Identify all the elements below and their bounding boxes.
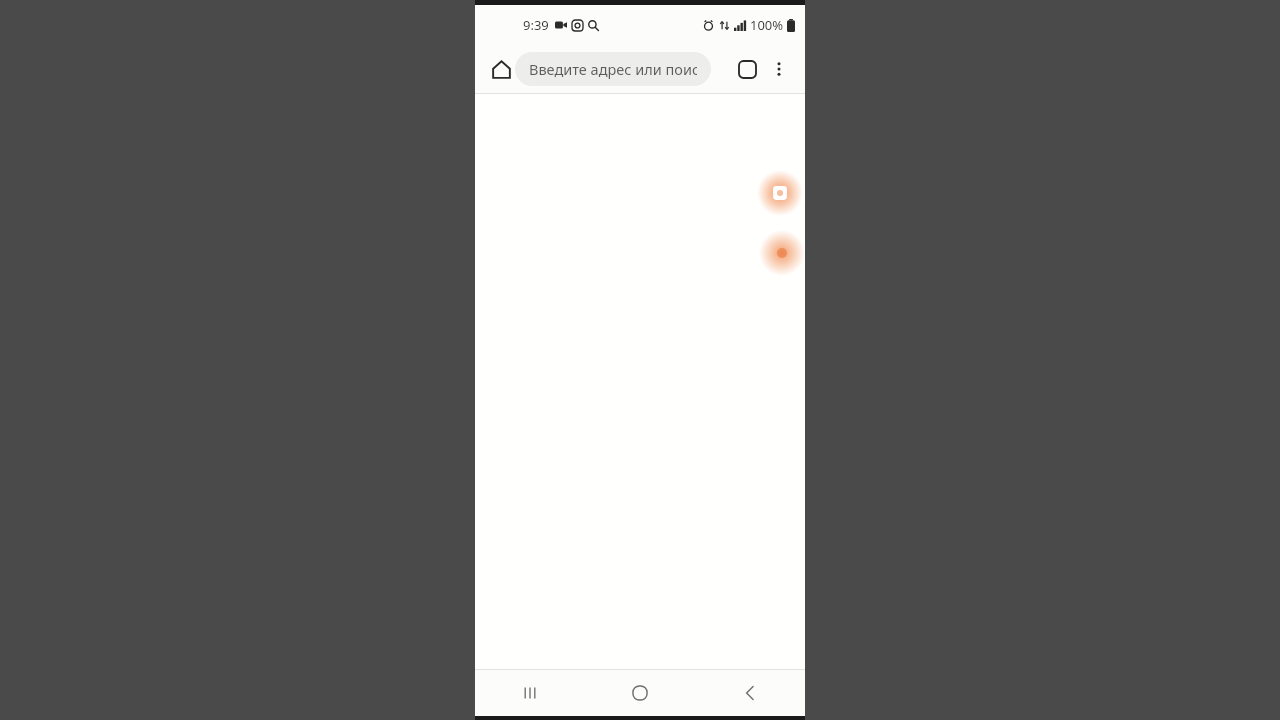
button[interactable]: Home	[483, 51, 519, 87]
button[interactable]: More options	[761, 51, 797, 87]
button[interactable]: Home	[585, 670, 695, 716]
button[interactable]: Введите адрес или поиск	[515, 52, 711, 86]
staticText: 100%	[750, 16, 784, 34]
staticText: 9:39	[523, 16, 549, 34]
staticText: Введите адрес или поиск	[529, 59, 697, 79]
button[interactable]: Back	[695, 670, 805, 716]
button[interactable]: Recent apps	[475, 670, 585, 716]
button[interactable]: Tabs	[729, 51, 765, 87]
